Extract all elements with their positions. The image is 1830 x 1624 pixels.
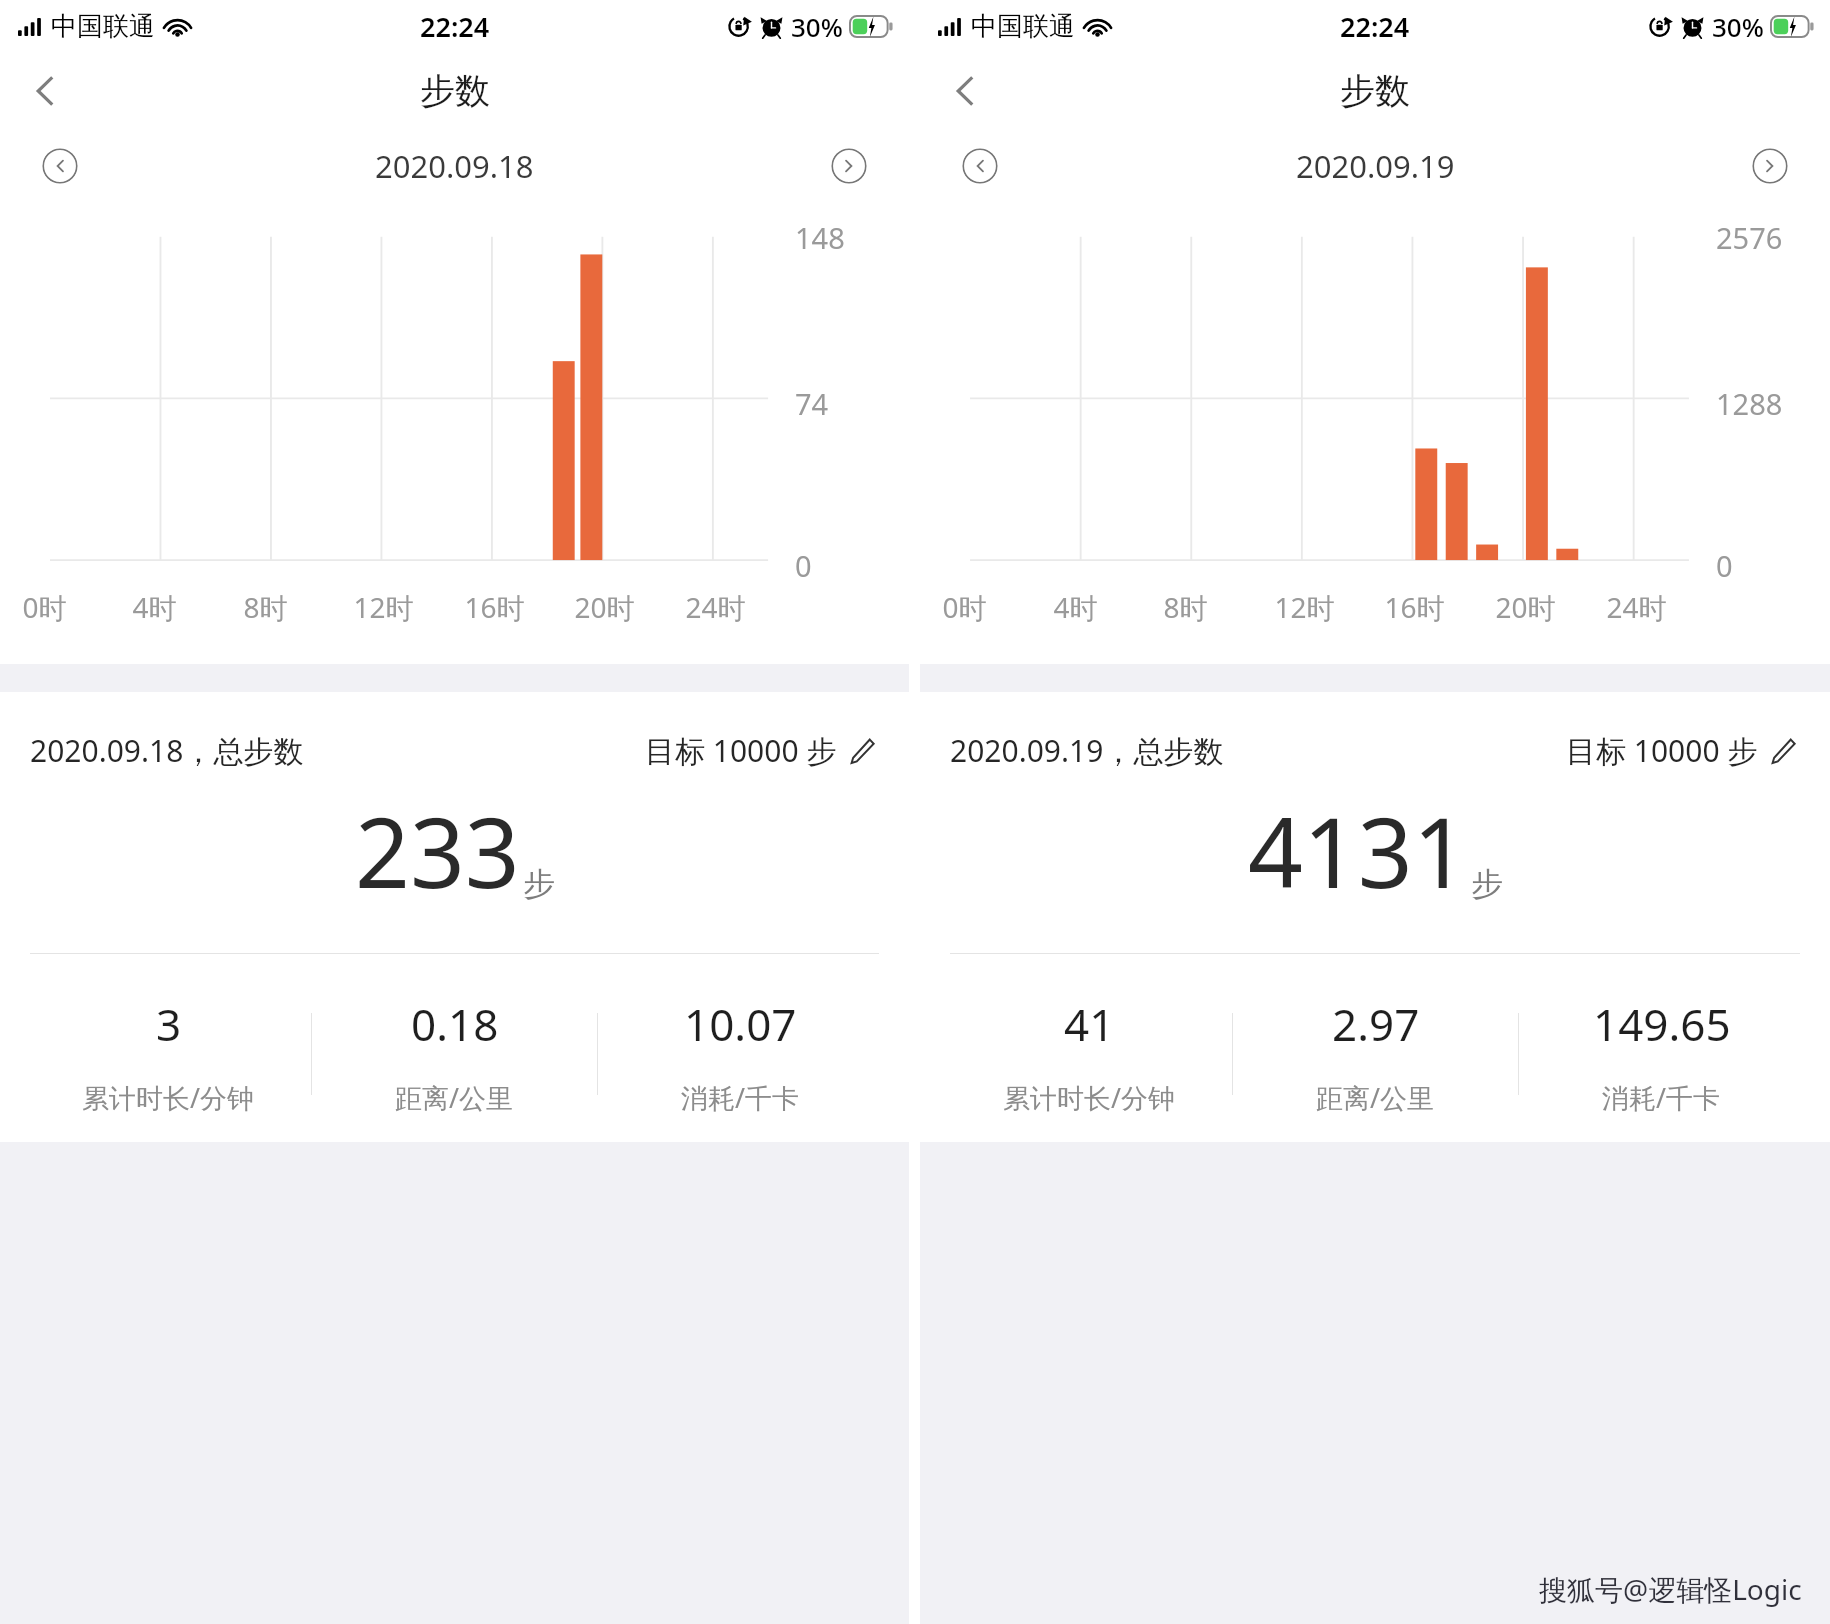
staticText: 累计时长/分钟 xyxy=(1003,1079,1176,1116)
staticText: 1288 xyxy=(1716,384,1783,423)
staticText: 8时 xyxy=(1163,588,1208,626)
staticText: 41 xyxy=(1064,994,1115,1054)
button[interactable]: 3 xyxy=(26,988,311,1120)
staticText: 24时 xyxy=(685,588,746,626)
staticText: 搜狐号@逻辑怪Logic xyxy=(1539,1570,1802,1608)
staticText: 148 xyxy=(795,218,845,257)
staticText: 20时 xyxy=(574,588,635,626)
staticText: 2020.09.19 xyxy=(1296,145,1455,187)
staticText: 4131 xyxy=(1248,785,1468,916)
staticText: 步数 xyxy=(1340,69,1410,113)
button[interactable]: 前一天 xyxy=(962,148,998,184)
staticText: 2020.09.18 xyxy=(375,145,534,187)
staticText: 20时 xyxy=(1495,588,1556,626)
staticText: 步 xyxy=(523,864,555,904)
staticText: 4时 xyxy=(132,588,177,626)
staticText: 24时 xyxy=(1606,588,1667,626)
staticText: 10.07 xyxy=(684,994,797,1054)
staticText: 距离/公里 xyxy=(395,1079,514,1116)
staticText: 16时 xyxy=(464,588,525,626)
staticText: 步数 xyxy=(420,69,490,113)
button[interactable]: 10.07 xyxy=(598,988,883,1120)
staticText: 3 xyxy=(156,994,182,1054)
button[interactable]: 目标 10000 步 xyxy=(641,726,879,775)
staticText: 2020.09.18，总步数 xyxy=(30,730,304,771)
staticText: 12时 xyxy=(1274,588,1335,626)
staticText: 消耗/千卡 xyxy=(1602,1079,1721,1116)
staticText: 步 xyxy=(1471,864,1503,904)
staticText: 8时 xyxy=(243,588,288,626)
staticText: 22:24 xyxy=(420,8,490,45)
other: 编辑目标 xyxy=(1770,738,1796,764)
staticText: 0时 xyxy=(942,588,987,626)
staticText: 16时 xyxy=(1384,588,1445,626)
button[interactable]: 返回 xyxy=(14,60,76,122)
other: 编辑目标 xyxy=(849,738,875,764)
staticText: 0 xyxy=(795,546,812,585)
staticText: 0.18 xyxy=(411,994,499,1054)
staticText: 4时 xyxy=(1053,588,1098,626)
button[interactable]: 41 xyxy=(946,988,1232,1120)
staticText: 2.97 xyxy=(1332,994,1420,1054)
staticText: 0时 xyxy=(22,588,67,626)
staticText: 0 xyxy=(1716,546,1733,585)
button[interactable]: 后一天 xyxy=(831,148,867,184)
staticText: 目标 10000 步 xyxy=(645,730,837,771)
staticText: 目标 10000 步 xyxy=(1566,730,1758,771)
staticText: 中国联通 xyxy=(971,10,1075,43)
staticText: 22:24 xyxy=(1340,8,1410,45)
staticText: 30% xyxy=(791,9,843,44)
button[interactable]: 0.18 xyxy=(312,988,597,1120)
button[interactable]: 返回 xyxy=(934,60,996,122)
staticText: 消耗/千卡 xyxy=(681,1079,800,1116)
button[interactable]: 149.65 xyxy=(1519,988,1804,1120)
staticText: 12时 xyxy=(353,588,414,626)
staticText: 中国联通 xyxy=(51,10,155,43)
staticText: 74 xyxy=(795,384,829,423)
button[interactable]: 目标 10000 步 xyxy=(1562,726,1800,775)
staticText: 2020.09.19，总步数 xyxy=(950,730,1224,771)
button[interactable]: 前一天 xyxy=(42,148,78,184)
staticText: 30% xyxy=(1712,9,1764,44)
staticText: 距离/公里 xyxy=(1316,1079,1435,1116)
button[interactable]: 后一天 xyxy=(1752,148,1788,184)
staticText: 233 xyxy=(355,785,520,916)
staticText: 2576 xyxy=(1716,218,1783,257)
button[interactable]: 2.97 xyxy=(1233,988,1518,1120)
staticText: 累计时长/分钟 xyxy=(82,1079,255,1116)
staticText: 149.65 xyxy=(1593,994,1731,1054)
